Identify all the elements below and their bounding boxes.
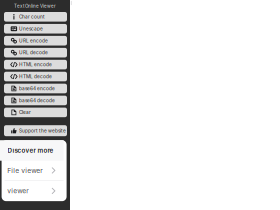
button[interactable]: base64 decode <box>4 96 67 105</box>
staticText: URL encode <box>19 38 48 43</box>
button[interactable]: Clear <box>4 108 67 117</box>
staticText: viewer <box>7 187 29 195</box>
staticText: Discover more <box>8 147 54 154</box>
button[interactable]: File viewer <box>0 161 64 180</box>
staticText: File viewer <box>7 166 43 174</box>
button[interactable]: URL encode <box>4 36 67 45</box>
button[interactable]: base64 encode <box>4 84 67 93</box>
staticText: URL decode <box>19 50 48 55</box>
staticText: Unescape <box>19 26 43 32</box>
staticText: base64 decode <box>19 98 55 103</box>
staticText: HTML encode <box>19 62 52 67</box>
button[interactable]: Support the website <box>4 125 67 136</box>
staticText: HTML decode <box>19 74 52 79</box>
button[interactable]: HTML decode <box>4 72 67 81</box>
button[interactable]: Char count <box>4 12 67 22</box>
button[interactable]: Unescape <box>4 24 67 33</box>
staticText: Clear <box>19 109 31 115</box>
staticText: Support the website <box>19 128 66 133</box>
staticText: Char count <box>19 14 45 20</box>
button[interactable]: URL decode <box>4 48 67 57</box>
staticText: Text Online Viewer <box>14 3 56 9</box>
button[interactable]: HTML encode <box>4 60 67 69</box>
staticText: base64 encode <box>19 86 55 91</box>
button[interactable]: viewer <box>0 181 64 201</box>
